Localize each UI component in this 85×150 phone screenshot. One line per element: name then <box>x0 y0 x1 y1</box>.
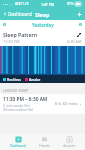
staticText: Yesterday <box>32 22 54 28</box>
button[interactable]: Add sleep log <box>74 9 85 20</box>
staticText: LOGGED SLEEP <box>3 88 29 93</box>
button[interactable]: Previous day <box>0 21 9 28</box>
staticText: Friends <box>39 144 50 148</box>
staticText: Dashboard <box>8 11 32 17</box>
staticText: 20 mins restless (9x) <box>3 108 34 112</box>
staticText: Awake <box>29 77 41 82</box>
staticText: Dashboard <box>10 144 26 148</box>
staticText: Account <box>63 144 75 148</box>
button[interactable]: Dashboard <box>7 135 29 149</box>
staticText: 0 mins awake (0x) <box>3 104 30 108</box>
button[interactable]: Next day <box>76 21 85 28</box>
staticText: AT&T LTE <box>15 2 29 6</box>
button[interactable]: Dashboard <box>0 9 35 19</box>
button[interactable]: 11:30 PM – 6:30 AM <box>0 94 85 114</box>
staticText: 1:47 PM <box>41 2 54 7</box>
staticText: Sleep <box>35 11 50 18</box>
button[interactable]: Account <box>60 135 78 149</box>
staticText: 6:30 AM <box>67 39 82 44</box>
staticText: 6 h 32 mins <box>55 101 78 107</box>
button[interactable]: Expand chart <box>76 32 82 38</box>
button[interactable]: Friends <box>36 135 53 149</box>
staticText: Sleep Pattern <box>3 31 38 38</box>
staticText: 11:30 PM <box>3 39 20 44</box>
staticText: 97% <box>67 2 74 6</box>
staticText: Restless <box>7 77 21 82</box>
staticText: 11:30 PM – 6:30 AM <box>3 96 48 103</box>
